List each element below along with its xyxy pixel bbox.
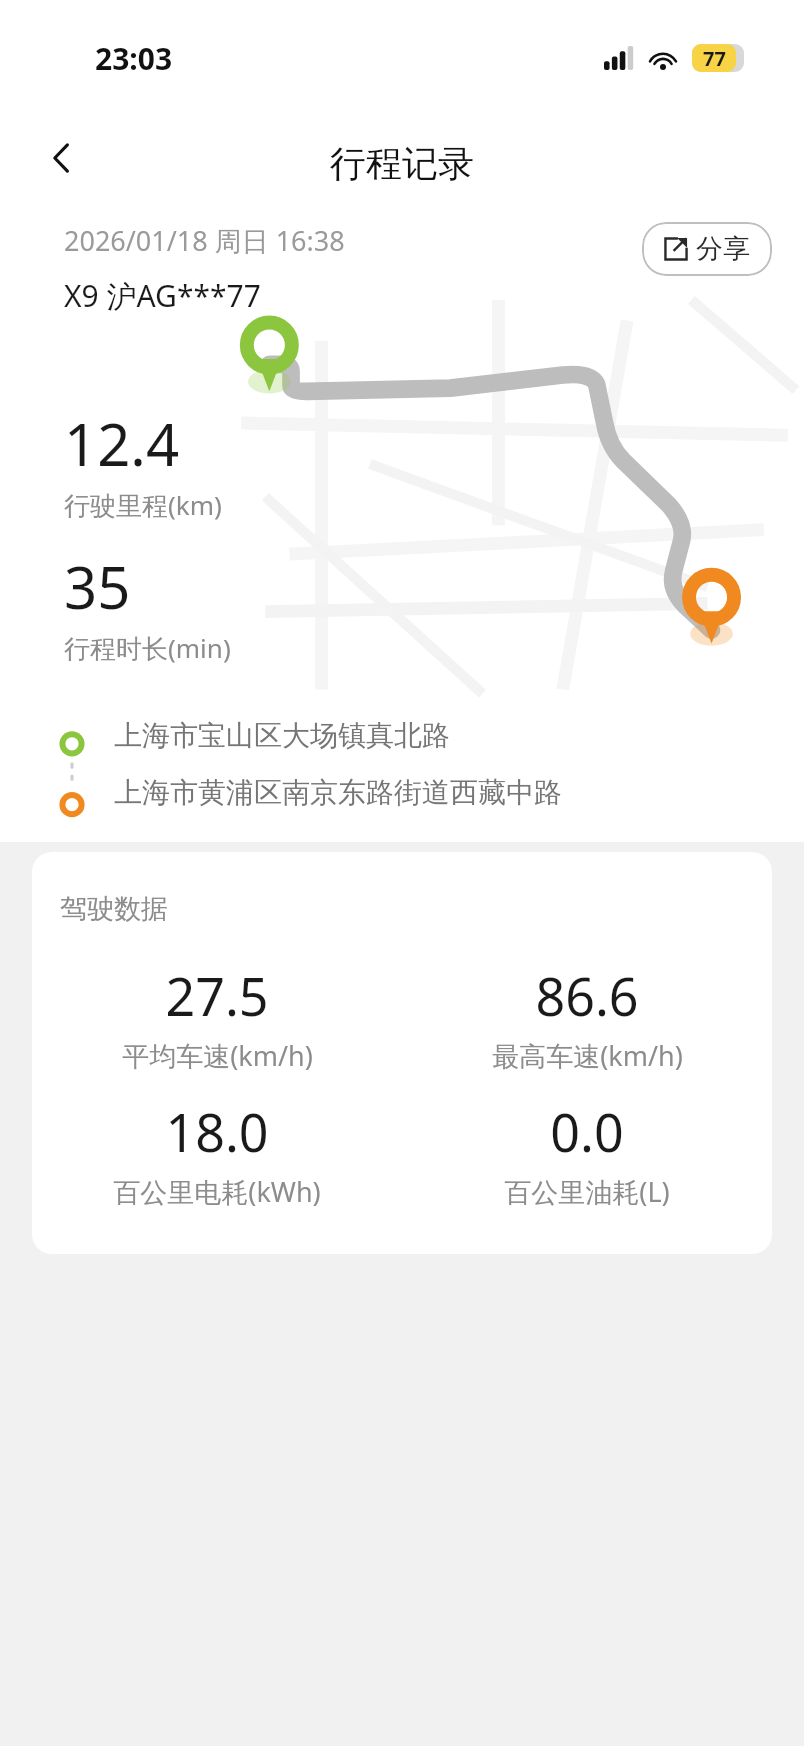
staticText: 百公里油耗(L) [504, 1173, 670, 1210]
button[interactable]: Back [30, 126, 94, 190]
staticText: 27.5 [165, 960, 269, 1031]
staticText: 77 [703, 45, 726, 72]
staticText: 上海市宝山区大场镇真北路 [114, 718, 450, 753]
staticText: 平均车速(km/h) [122, 1037, 313, 1074]
staticText: 驾驶数据 [60, 892, 168, 926]
staticText: 行程时长(min) [64, 630, 231, 666]
staticText: 最高车速(km/h) [492, 1037, 683, 1074]
button[interactable]: 上海市宝山区大场镇真北路 [114, 718, 804, 753]
staticText: 行程记录 [330, 141, 474, 186]
staticText: 行驶里程(km) [64, 487, 222, 523]
staticText: 上海市黄浦区南京东路街道西藏中路 [114, 775, 562, 810]
staticText: 0.0 [550, 1096, 624, 1167]
staticText: X9 沪AG***77 [64, 275, 261, 316]
staticText: 86.6 [535, 960, 639, 1031]
button[interactable]: 上海市黄浦区南京东路街道西藏中路 [114, 775, 804, 810]
button[interactable]: 分享 [642, 222, 772, 276]
staticText: 2026/01/18 周日 16:38 [64, 222, 345, 259]
staticText: 23:03 [95, 38, 173, 79]
staticText: 18.0 [165, 1096, 269, 1167]
staticText: 分享 [696, 232, 750, 266]
staticText: 12.4 [64, 404, 180, 483]
button[interactable]: 驾驶数据 [32, 852, 772, 1254]
staticText: 百公里电耗(kWh) [113, 1173, 321, 1210]
staticText: 35 [64, 547, 131, 626]
